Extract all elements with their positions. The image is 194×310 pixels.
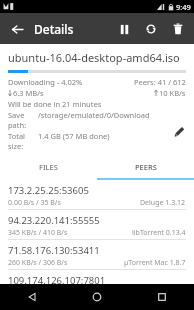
staticText: Total size: [8,131,38,151]
staticText: libTorrent 0.13.4 [132,228,186,238]
button[interactable]: 71.58.176.130:53411 [0,240,194,269]
staticText: Details [34,21,74,37]
staticText: 10 KB/s [159,88,186,98]
button[interactable]: Recent apps [129,284,194,310]
button[interactable]: 94.23.220.141:55555 [0,210,194,239]
button[interactable]: PEERS [97,156,194,178]
staticText: 71.58.176.130:53411 [8,244,100,257]
button[interactable]: 109.174.126.107:7801 [0,270,194,284]
staticText: µTorrent Mac 1.8.7 [124,258,186,268]
staticText: 9:49 [176,2,191,12]
staticText: 0.00 B/s / 35 B/s [8,198,61,208]
staticText: Peers: 41 / 612 [134,77,186,87]
staticText: 345 KB/s / 410 B/s [8,228,68,238]
staticText: Will be done in 21 minutes [8,99,102,109]
staticText: 94.23.220.141:55555 [8,214,100,227]
staticText: PEERS [135,162,157,172]
staticText: FILES [39,162,58,172]
button[interactable]: 173.2.25.25:53605 [0,180,194,209]
staticText: 173.2.25.25:53605 [8,184,89,197]
staticText: ubuntu-16.04-desktop-amd64.iso [8,50,180,65]
button[interactable]: FILES [0,156,97,178]
button[interactable]: Delete [165,16,191,42]
button[interactable]: Refresh [138,16,164,42]
staticText: Save path: [8,110,38,130]
staticText: 260 KB/s / 306 B/s [8,258,68,268]
button[interactable]: Back [4,16,30,42]
button[interactable]: Edit save path [168,120,190,142]
button[interactable]: Home [64,284,129,310]
staticText: 109.174.126.107:7801 [8,274,106,284]
staticText: Deluge 1.3.12 [140,198,186,208]
button[interactable]: Pause [111,16,137,42]
staticText: Downloading - 4.02% [8,77,83,87]
button[interactable]: Back [0,284,64,310]
staticText: /storage/emulated/0/Download [38,110,150,120]
staticText: 6.3 MB/s [13,88,44,98]
staticText: 1.4 GB (57 MB done) [38,131,110,141]
